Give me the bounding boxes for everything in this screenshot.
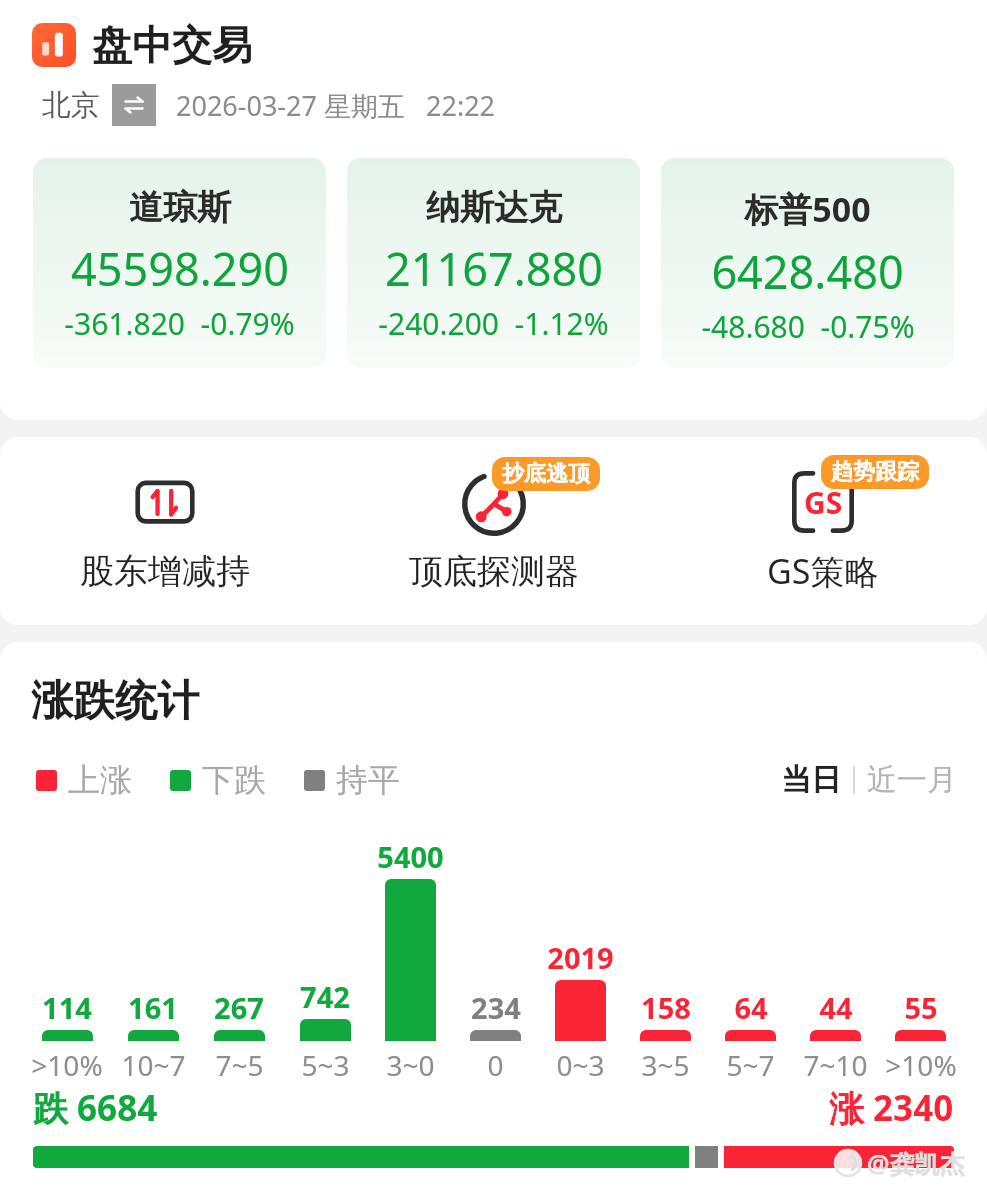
- staticText: 6428.480: [711, 241, 904, 302]
- staticText: 0~3: [556, 1046, 605, 1084]
- button[interactable]: 应用图标: [32, 23, 76, 67]
- button[interactable]: 持平: [304, 760, 400, 800]
- staticText: 涨 2340: [829, 1084, 954, 1132]
- button[interactable]: 北京: [30, 84, 156, 126]
- staticText: 7~10: [803, 1046, 868, 1084]
- staticText: 北京: [42, 87, 100, 124]
- staticText: 45598.290: [71, 238, 289, 299]
- staticText: 涨跌统计: [31, 675, 199, 728]
- staticText: 5~7: [726, 1046, 775, 1084]
- button[interactable]: 纳斯达克: [347, 158, 640, 368]
- staticText: -240.200 -1.12%: [378, 303, 609, 344]
- staticText: 55: [904, 988, 938, 1027]
- staticText: >10%: [31, 1046, 103, 1084]
- staticText: 267: [214, 988, 264, 1027]
- staticText: GS策略: [767, 548, 879, 594]
- staticText: 114: [42, 988, 92, 1027]
- staticText: 161: [128, 988, 178, 1027]
- staticText: 158: [641, 988, 691, 1027]
- button[interactable]: 下跌: [170, 760, 266, 800]
- staticText: 下跌: [202, 760, 266, 800]
- button[interactable]: 股东增减持: [0, 437, 329, 625]
- staticText: 21167.880: [385, 238, 603, 299]
- staticText: 742: [300, 977, 350, 1016]
- staticText: 2026-03-27 星期五 22:22: [176, 87, 496, 124]
- staticText: 趋势跟踪: [831, 458, 919, 486]
- button[interactable]: 上涨: [36, 760, 132, 800]
- button[interactable]: 道琼斯: [33, 158, 326, 368]
- staticText: 道琼斯: [129, 186, 231, 229]
- staticText: -361.820 -0.79%: [64, 303, 295, 344]
- button[interactable]: 近一月: [867, 761, 957, 799]
- staticText: 抄底逃顶: [502, 460, 590, 488]
- staticText: 44: [819, 988, 853, 1027]
- staticText: 5400: [377, 837, 444, 876]
- staticText: 10~7: [121, 1046, 186, 1084]
- staticText: 234: [471, 988, 521, 1027]
- staticText: @龚凯杰: [867, 1146, 965, 1180]
- staticText: 5~3: [301, 1046, 350, 1084]
- staticText: 跌 6684: [33, 1084, 158, 1132]
- staticText: 盘中交易: [92, 20, 252, 70]
- staticText: 2019: [547, 938, 614, 977]
- staticText: 标普500: [744, 186, 871, 232]
- other: 顶底探测器: [462, 472, 526, 536]
- button[interactable]: 顶底探测器: [329, 437, 658, 625]
- button[interactable]: 当日: [781, 761, 841, 799]
- staticText: 3~5: [641, 1046, 690, 1084]
- staticText: 纳斯达克: [426, 186, 562, 229]
- staticText: 64: [734, 988, 768, 1027]
- staticText: -48.680 -0.75%: [701, 306, 915, 347]
- staticText: 上涨: [68, 760, 132, 800]
- staticText: 3~0: [386, 1046, 435, 1084]
- button[interactable]: GS策略: [658, 437, 987, 625]
- other: 股东增减持: [134, 473, 196, 535]
- staticText: 股东增减持: [80, 550, 250, 593]
- staticText: 当日: [781, 761, 841, 799]
- staticText: 7~5: [215, 1046, 264, 1084]
- staticText: GS: [804, 482, 843, 523]
- staticText: 持平: [336, 760, 400, 800]
- staticText: 顶底探测器: [409, 550, 579, 593]
- staticText: 0: [487, 1046, 504, 1084]
- staticText: >10%: [885, 1046, 957, 1084]
- staticText: 近一月: [867, 761, 957, 799]
- other: GS策略: [792, 471, 854, 533]
- button[interactable]: 标普500: [661, 158, 954, 368]
